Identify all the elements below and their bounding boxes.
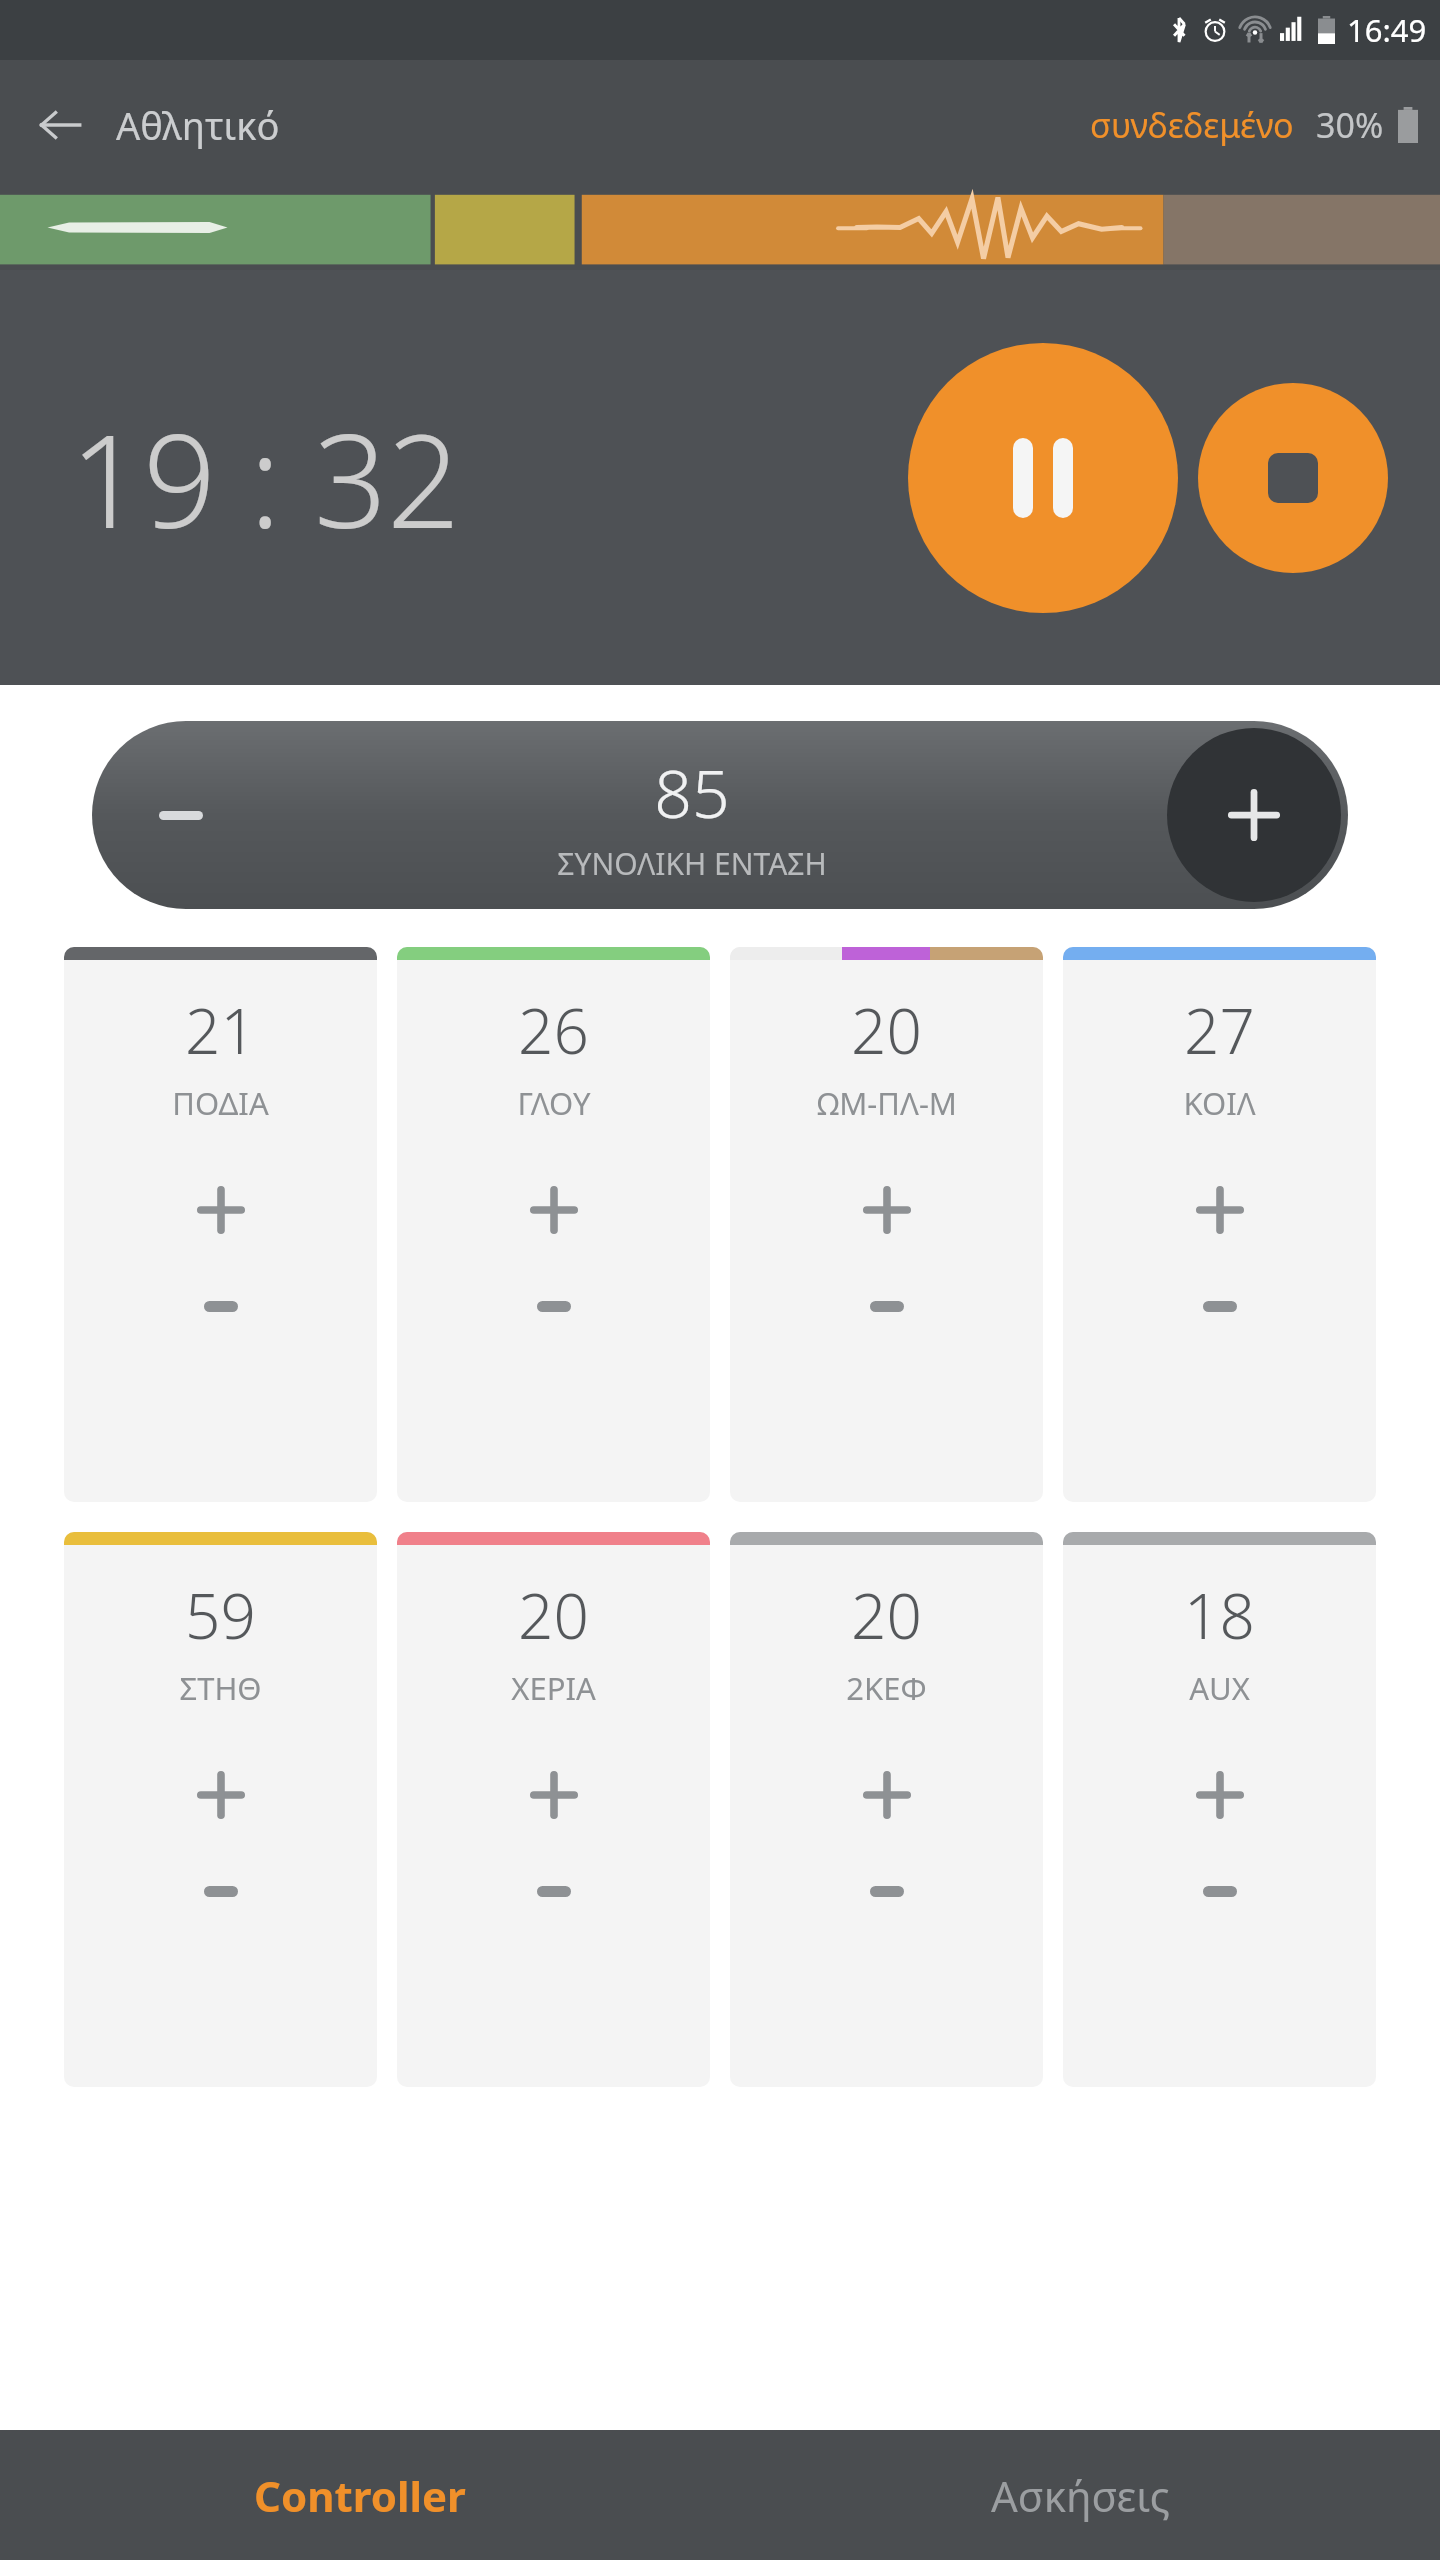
button[interactable]: Increase ΚΟΙΛ xyxy=(1063,1162,1376,1258)
staticText: ΧΕΡΙΑ xyxy=(511,1667,596,1709)
button[interactable]: Decrease ΠΟΔΙΑ xyxy=(64,1258,377,1354)
button[interactable]: Decrease ΣΤΗΘ xyxy=(64,1843,377,1939)
button[interactable]: 21 xyxy=(64,947,377,1502)
staticText: ΣΥΝΟΛΙΚΗ ΕΝΤΑΣΗ xyxy=(557,843,827,884)
button[interactable]: Decrease AUX xyxy=(1063,1843,1376,1939)
button[interactable]: Increase total intensity xyxy=(1167,728,1341,902)
button[interactable]: Decrease ΚΟΙΛ xyxy=(1063,1258,1376,1354)
staticText: ΠΟΔΙΑ xyxy=(172,1082,269,1124)
staticText: Ασκήσεις xyxy=(991,2467,1170,2524)
button[interactable]: Increase AUX xyxy=(1063,1747,1376,1843)
staticText: 85 xyxy=(654,747,730,837)
button[interactable]: Ασκήσεις xyxy=(720,2430,1440,2560)
staticText: Αθλητικό xyxy=(116,99,280,151)
button[interactable]: 27 xyxy=(1063,947,1376,1502)
staticText: 59 xyxy=(185,1573,256,1657)
staticText: 2ΚΕΦ xyxy=(846,1667,927,1709)
staticText: συνδεδεμένο xyxy=(1090,102,1294,148)
button[interactable]: Decrease ΧΕΡΙΑ xyxy=(397,1843,710,1939)
button[interactable]: Controller xyxy=(0,2430,720,2560)
staticText: 18 xyxy=(1184,1573,1255,1657)
button[interactable]: Increase ΣΤΗΘ xyxy=(64,1747,377,1843)
staticText: 26 xyxy=(518,988,589,1072)
button[interactable]: Back xyxy=(22,87,98,163)
button[interactable]: 20 xyxy=(397,1532,710,2087)
staticText: Controller xyxy=(254,2467,466,2524)
staticText: ΩΜ-ΠΛ-Μ xyxy=(817,1082,957,1124)
button[interactable]: Increase ΩΜ-ΠΛ-Μ xyxy=(730,1162,1043,1258)
button[interactable]: 18 xyxy=(1063,1532,1376,2087)
staticText: ΚΟΙΛ xyxy=(1183,1082,1256,1124)
button[interactable]: Increase ΧΕΡΙΑ xyxy=(397,1747,710,1843)
staticText: 16:49 xyxy=(1347,9,1427,51)
button[interactable]: Decrease 2ΚΕΦ xyxy=(730,1843,1043,1939)
button[interactable]: Increase 2ΚΕΦ xyxy=(730,1747,1043,1843)
button[interactable]: 26 xyxy=(397,947,710,1502)
staticText: AUX xyxy=(1189,1667,1250,1709)
button[interactable]: 59 xyxy=(64,1532,377,2087)
staticText: 20 xyxy=(851,988,922,1072)
staticText: 20 xyxy=(518,1573,589,1657)
button[interactable]: 20 xyxy=(730,947,1043,1502)
button[interactable]: Stop xyxy=(1198,383,1388,573)
staticText: 30% xyxy=(1316,102,1384,148)
button[interactable]: Decrease ΩΜ-ΠΛ-Μ xyxy=(730,1258,1043,1354)
staticText: 19 : 32 xyxy=(70,391,461,565)
button[interactable]: Decrease total intensity xyxy=(92,721,1348,909)
button[interactable]: Decrease total intensity xyxy=(126,760,236,870)
staticText: 21 xyxy=(185,988,256,1072)
button[interactable]: Increase ΠΟΔΙΑ xyxy=(64,1162,377,1258)
staticText: 27 xyxy=(1184,988,1255,1072)
staticText: 20 xyxy=(851,1573,922,1657)
staticText: ΓΛΟΥ xyxy=(517,1082,591,1124)
button[interactable]: 20 xyxy=(730,1532,1043,2087)
button[interactable]: Increase ΓΛΟΥ xyxy=(397,1162,710,1258)
button[interactable]: Decrease ΓΛΟΥ xyxy=(397,1258,710,1354)
staticText: ΣΤΗΘ xyxy=(179,1667,262,1709)
button[interactable]: Pause xyxy=(908,343,1178,613)
